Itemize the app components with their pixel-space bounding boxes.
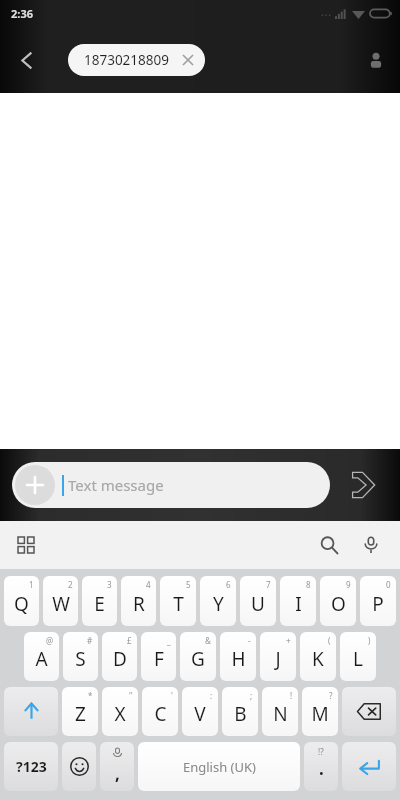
button[interactable]: - bbox=[220, 632, 256, 681]
staticText: 18730218809 bbox=[84, 51, 169, 69]
staticText: O bbox=[331, 591, 346, 617]
staticText: @ bbox=[46, 635, 54, 646]
staticText: Y bbox=[213, 591, 224, 617]
button[interactable]: ; bbox=[222, 687, 258, 736]
staticText: 5 bbox=[186, 579, 191, 590]
button[interactable]: ' bbox=[142, 687, 178, 736]
staticText: , bbox=[115, 762, 120, 785]
staticText: X bbox=[114, 701, 126, 727]
staticText: : bbox=[210, 690, 213, 701]
button[interactable]: 2 bbox=[43, 576, 78, 626]
staticText: Q bbox=[14, 591, 29, 617]
staticText: 8 bbox=[306, 579, 311, 590]
staticText: Z bbox=[75, 701, 86, 727]
staticText: F bbox=[154, 646, 164, 672]
staticText: 9 bbox=[346, 579, 351, 590]
staticText: 1 bbox=[29, 579, 34, 590]
button[interactable]: £ bbox=[102, 632, 137, 681]
button[interactable]: 5 bbox=[160, 576, 196, 626]
button[interactable]: 7 bbox=[240, 576, 276, 626]
button[interactable]: ) bbox=[340, 632, 376, 681]
button[interactable]: Voice input bbox=[350, 524, 392, 566]
button[interactable]: _ bbox=[141, 632, 176, 681]
staticText: ?123 bbox=[16, 757, 47, 776]
staticText: ? bbox=[329, 690, 333, 701]
button[interactable]: # bbox=[63, 632, 98, 681]
staticText: P bbox=[372, 591, 384, 617]
button[interactable]: 0 bbox=[360, 576, 396, 626]
button[interactable]: Comma bbox=[100, 742, 134, 791]
staticText: R bbox=[133, 591, 145, 617]
staticText: C bbox=[154, 701, 167, 727]
button[interactable]: Symbols bbox=[4, 742, 58, 791]
button[interactable]: 18730218809 bbox=[68, 44, 205, 76]
staticText: + bbox=[286, 635, 291, 646]
staticText: S bbox=[75, 646, 86, 672]
staticText: ) bbox=[368, 635, 371, 646]
staticText: & bbox=[205, 635, 211, 646]
staticText: V bbox=[194, 701, 206, 727]
staticText: " bbox=[129, 690, 133, 701]
button[interactable]: ! bbox=[262, 687, 298, 736]
button[interactable]: & bbox=[180, 632, 216, 681]
staticText: L bbox=[353, 646, 363, 672]
button[interactable]: Backspace bbox=[342, 687, 396, 736]
staticText: D bbox=[113, 646, 127, 672]
button[interactable]: 6 bbox=[200, 576, 236, 626]
button[interactable]: Contacts bbox=[352, 36, 400, 84]
staticText: A bbox=[35, 646, 48, 672]
button[interactable]: ( bbox=[300, 632, 336, 681]
button[interactable]: 4 bbox=[121, 576, 156, 626]
button[interactable]: + bbox=[260, 632, 296, 681]
button[interactable]: : bbox=[182, 687, 218, 736]
staticText: E bbox=[94, 591, 105, 617]
button[interactable]: 3 bbox=[82, 576, 117, 626]
staticText: N bbox=[273, 701, 288, 727]
staticText: H bbox=[231, 646, 246, 672]
staticText: 3 bbox=[107, 579, 112, 590]
staticText: I bbox=[295, 591, 302, 617]
button[interactable]: Add attachment bbox=[15, 465, 55, 505]
staticText: English (UK) bbox=[183, 758, 256, 776]
staticText: K bbox=[312, 646, 324, 672]
staticText: !? bbox=[318, 746, 324, 757]
staticText: 2 bbox=[68, 579, 73, 590]
button[interactable]: 1 bbox=[4, 576, 39, 626]
button[interactable]: Enter bbox=[342, 742, 396, 791]
staticText: W bbox=[52, 591, 70, 617]
button[interactable]: Shift bbox=[4, 687, 58, 736]
staticText: 7 bbox=[266, 579, 271, 590]
staticText: ( bbox=[328, 635, 331, 646]
button[interactable]: Remove recipient bbox=[179, 51, 197, 69]
staticText: * bbox=[88, 690, 93, 701]
button[interactable]: " bbox=[102, 687, 138, 736]
button[interactable]: Back bbox=[0, 33, 54, 87]
button[interactable]: ? bbox=[302, 687, 338, 736]
button[interactable]: Send bbox=[338, 460, 388, 510]
staticText: - bbox=[248, 635, 251, 646]
staticText: ! bbox=[290, 690, 293, 701]
button[interactable]: Search bbox=[308, 524, 350, 566]
staticText: ; bbox=[250, 690, 253, 701]
staticText: B bbox=[234, 701, 247, 727]
button[interactable]: !? bbox=[304, 742, 338, 791]
button[interactable]: 9 bbox=[320, 576, 356, 626]
button[interactable]: 8 bbox=[280, 576, 316, 626]
button[interactable]: @ bbox=[24, 632, 59, 681]
staticText: U bbox=[251, 591, 265, 617]
button[interactable]: Add attachment bbox=[12, 462, 330, 508]
staticText: 2:36 bbox=[11, 6, 33, 21]
button[interactable]: Emoji bbox=[62, 742, 96, 791]
staticText: Text message bbox=[68, 475, 164, 495]
button[interactable]: Space bbox=[138, 742, 300, 791]
staticText: G bbox=[191, 646, 205, 672]
staticText: T bbox=[173, 591, 184, 617]
button[interactable]: * bbox=[62, 687, 98, 736]
staticText: # bbox=[87, 635, 93, 646]
staticText: J bbox=[275, 646, 281, 672]
staticText: ' bbox=[171, 690, 173, 701]
staticText: £ bbox=[127, 635, 132, 646]
staticText: _ bbox=[167, 635, 171, 646]
staticText: . bbox=[319, 757, 324, 780]
button[interactable]: Keyboard options bbox=[6, 525, 46, 565]
